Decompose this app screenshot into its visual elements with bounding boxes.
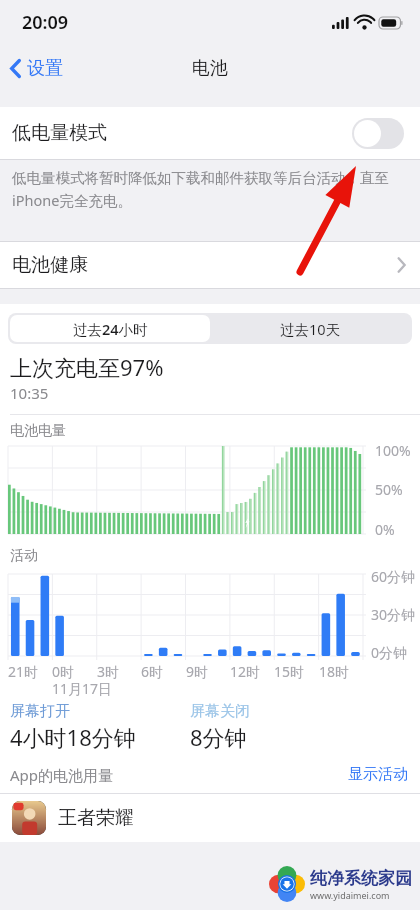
staticText: 电池健康 (12, 253, 88, 277)
button[interactable]: 过去24小时 (10, 315, 210, 342)
button[interactable]: 显示活动 (346, 763, 410, 786)
button[interactable]: 设置 (0, 49, 77, 88)
staticText: 低电量模式 (12, 121, 107, 145)
button[interactable]: 电池健康 (0, 242, 420, 288)
staticText: 8分钟 (190, 722, 247, 752)
button[interactable]: 过去10天 (210, 315, 410, 342)
staticText: 15时 (274, 662, 305, 681)
staticText: App的电池用量 (10, 765, 114, 785)
staticText: 21时 (8, 662, 39, 681)
button[interactable]: 低电量模式 (0, 107, 420, 159)
staticText: 王者荣耀 (58, 806, 134, 830)
staticText: 0分钟 (371, 643, 408, 662)
staticText: 显示活动 (348, 765, 408, 784)
staticText: 60分钟 (371, 567, 416, 586)
staticText: 过去10天 (280, 319, 341, 339)
staticText: 50% (375, 480, 403, 499)
staticText: 9时 (186, 662, 209, 681)
staticText: 活动 (10, 547, 38, 565)
staticText: 屏幕打开 (10, 702, 70, 721)
staticText: 6时 (141, 662, 164, 681)
staticText: 过去24小时 (73, 319, 148, 339)
staticText: 10:35 (10, 383, 49, 403)
staticText: 100% (375, 441, 411, 460)
staticText: 3时 (97, 662, 120, 681)
staticText: 纯净系统家园 (310, 868, 412, 889)
button[interactable]: 王者荣耀 (0, 794, 420, 842)
staticText: 设置 (27, 57, 63, 80)
staticText: 低电量模式将暂时降低如下载和邮件获取等后台活动，直至 (12, 169, 389, 187)
staticText: 电池 (192, 57, 228, 80)
staticText: 20:09 (22, 10, 69, 35)
staticText: 上次充电至97% (10, 352, 164, 382)
staticText: 18时 (319, 662, 350, 681)
staticText: 0时 (52, 662, 75, 681)
staticText: 30分钟 (371, 605, 416, 624)
staticText: 4小时18分钟 (10, 722, 136, 752)
staticText: iPhone完全充电。 (12, 190, 132, 210)
staticText: www.yidaimei.com (310, 889, 390, 901)
staticText: 0% (375, 520, 395, 539)
staticText: 屏幕关闭 (190, 702, 250, 721)
staticText: 11月17日 (52, 679, 113, 698)
staticText: 12时 (230, 662, 261, 681)
button[interactable]: 低电量模式开关 (352, 118, 404, 149)
staticText: 电池电量 (10, 422, 66, 440)
